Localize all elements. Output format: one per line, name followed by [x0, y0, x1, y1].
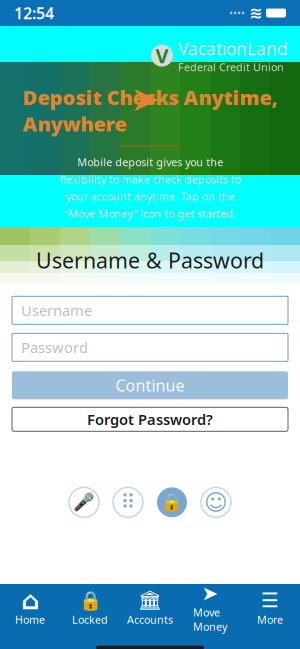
staticText: ••••	[229, 6, 245, 20]
staticText: Federal Credit Union	[178, 60, 284, 74]
staticText: More	[257, 612, 283, 627]
staticText: Forgot Password?	[87, 410, 213, 429]
staticText: 🏛	[138, 590, 162, 611]
staticText: Deposit Checks Anytime, Anywhere	[22, 84, 277, 137]
staticText: ➤	[201, 582, 218, 605]
staticText: Accounts	[127, 612, 173, 627]
button[interactable]: Passcode	[113, 487, 143, 517]
button[interactable]: ☰	[240, 583, 300, 631]
staticText: V	[155, 42, 168, 69]
staticText: Username & Password	[36, 246, 264, 274]
staticText: Username	[21, 301, 92, 320]
staticText: ☺	[204, 489, 228, 515]
button[interactable]: Username and password	[157, 487, 187, 517]
staticText: Continue	[115, 375, 184, 396]
staticText: 12:54	[14, 2, 54, 24]
staticText: Mobile deposit gives you the flexibility…	[59, 155, 240, 255]
staticText: ⌂	[21, 586, 39, 615]
button[interactable]: ➤	[180, 576, 240, 638]
staticText: Move Money	[193, 605, 227, 634]
button[interactable]: 🔒	[60, 583, 120, 631]
staticText: 🔒	[161, 492, 183, 512]
staticText: Password	[21, 338, 88, 357]
staticText: ☰	[261, 589, 279, 612]
button[interactable]: Voice login	[69, 487, 99, 517]
staticText: ➤	[130, 79, 159, 118]
staticText: ≋	[249, 4, 262, 22]
staticText: ⠿	[120, 491, 135, 514]
button[interactable]: Continue	[12, 371, 288, 399]
button[interactable]: Forgot Password?	[12, 407, 288, 431]
staticText: 🎤	[73, 492, 95, 512]
button[interactable]: Face ID	[201, 487, 231, 517]
button[interactable]: 🏛	[120, 583, 180, 631]
staticText: VacationLand	[178, 37, 288, 60]
staticText: 🔒	[78, 590, 101, 611]
button[interactable]: ⌂	[0, 583, 60, 631]
staticText: Home	[15, 612, 45, 627]
staticText: Locked	[72, 612, 108, 627]
